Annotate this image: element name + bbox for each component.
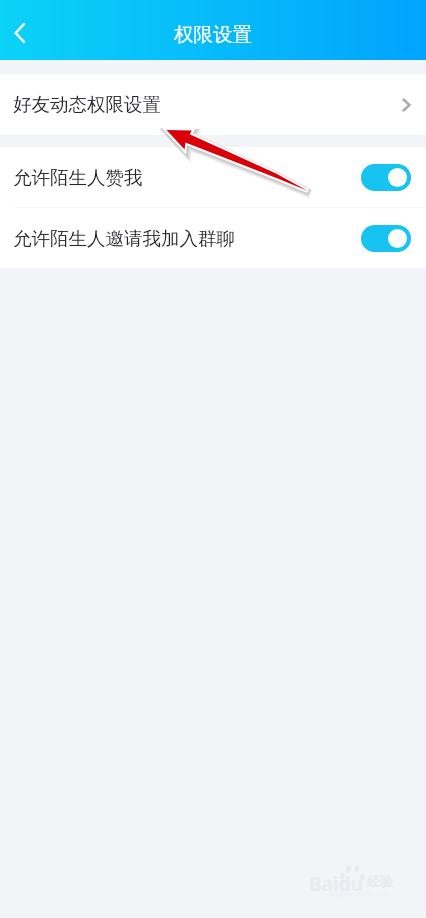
- staticText: 好友动态权限设置: [13, 93, 161, 116]
- staticText: 允许陌生人邀请我加入群聊: [13, 227, 235, 250]
- staticText: 允许陌生人赞我: [13, 166, 143, 189]
- staticText: 经验: [367, 873, 393, 889]
- button[interactable]: 允许陌生人邀请我加入群聊, 开启: [361, 225, 411, 252]
- button[interactable]: 允许陌生人邀请我加入群聊: [0, 208, 426, 268]
- button[interactable]: 允许陌生人赞我, 开启: [361, 164, 411, 191]
- button[interactable]: 好友动态权限设置: [0, 74, 426, 135]
- staticText: Baidu: [309, 871, 364, 897]
- button[interactable]: 允许陌生人赞我: [0, 147, 426, 207]
- staticText: 权限设置: [174, 22, 252, 47]
- button[interactable]: Back: [0, 11, 42, 55]
